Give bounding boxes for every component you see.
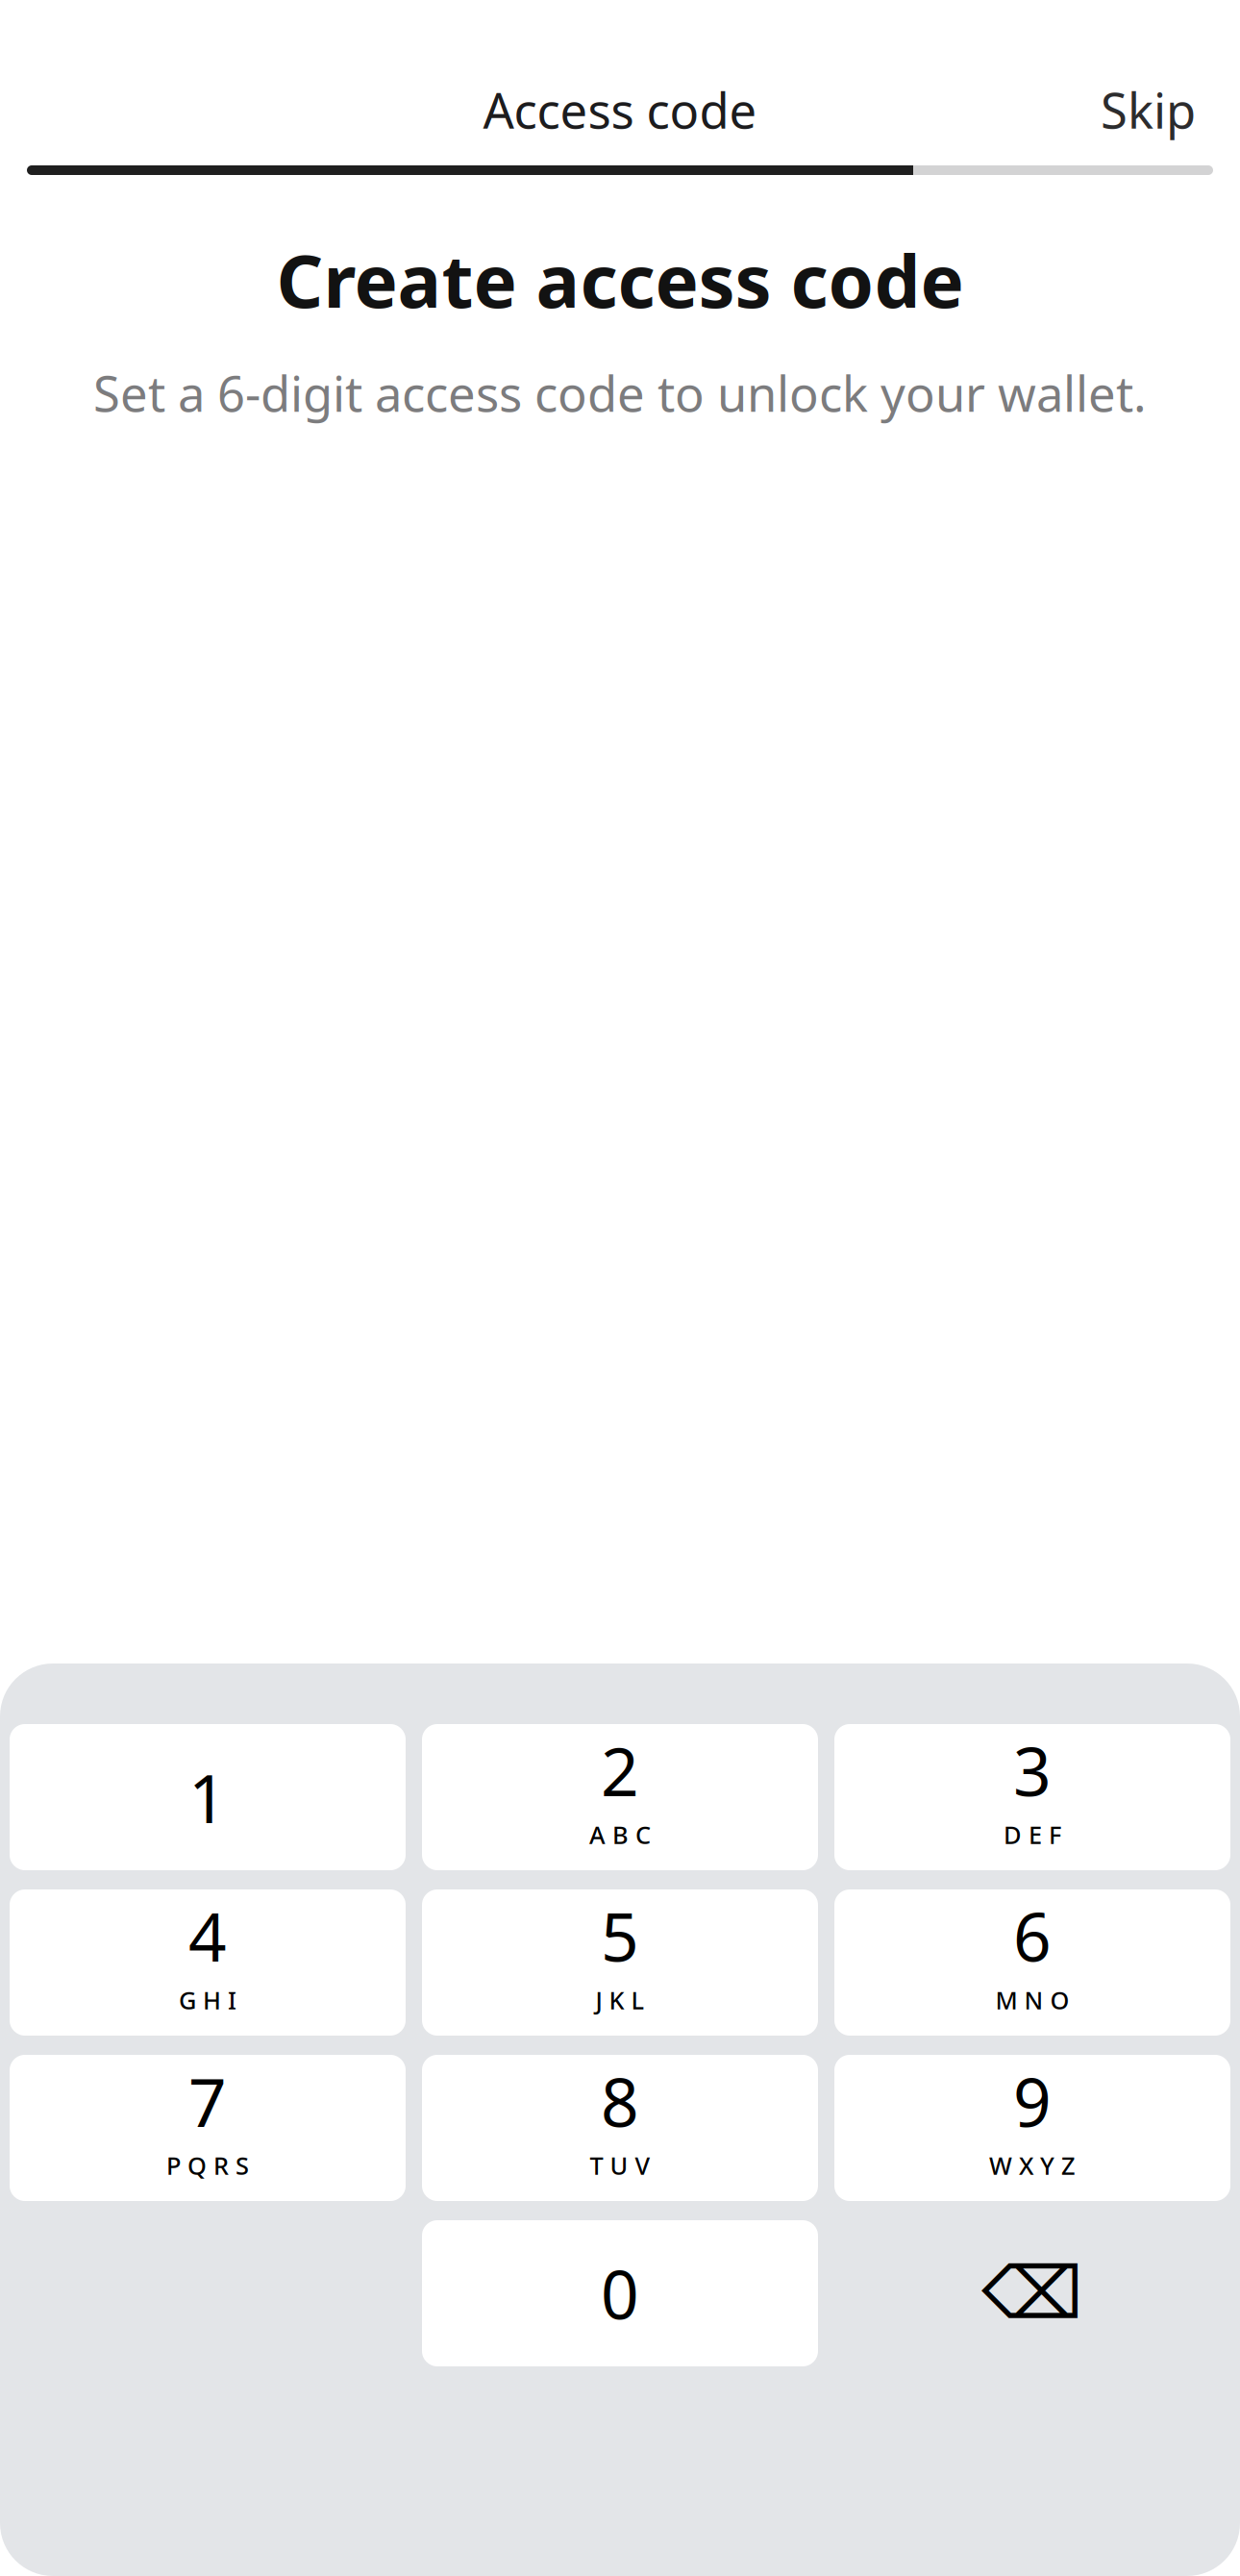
staticText: Set a 6-digit access code to unlock your…: [93, 360, 1147, 425]
button[interactable]: 9: [834, 2055, 1230, 2201]
staticText: 8: [601, 2057, 639, 2145]
staticText: A B C: [589, 1818, 651, 1851]
button[interactable]: 0: [422, 2220, 818, 2366]
staticText: Skip: [1101, 77, 1196, 142]
staticText: T U V: [590, 2149, 650, 2182]
staticText: W X Y Z: [989, 2149, 1076, 2182]
staticText: 1: [188, 1753, 227, 1841]
button[interactable]: 6: [834, 1889, 1230, 2036]
staticText: 4: [188, 1891, 227, 1980]
button[interactable]: Delete: [834, 2220, 1230, 2366]
staticText: ⌫: [981, 2253, 1083, 2334]
staticText: G H I: [179, 1984, 236, 2016]
button[interactable]: 5: [422, 1889, 818, 2036]
button[interactable]: 1: [10, 1724, 406, 1870]
staticText: D E F: [1004, 1818, 1061, 1851]
staticText: J K L: [595, 1984, 645, 2016]
staticText: M N O: [995, 1984, 1069, 2016]
staticText: 9: [1013, 2057, 1052, 2145]
staticText: 3: [1013, 1726, 1052, 1815]
staticText: 5: [601, 1891, 639, 1980]
button[interactable]: Skip: [1085, 66, 1211, 154]
staticText: 0: [601, 2249, 639, 2338]
staticText: Access code: [483, 77, 757, 142]
staticText: 7: [188, 2057, 227, 2145]
button[interactable]: 4: [10, 1889, 406, 2036]
button[interactable]: 2: [422, 1724, 818, 1870]
staticText: P Q R S: [166, 2149, 249, 2182]
staticText: 2: [601, 1726, 639, 1815]
staticText: Create access code: [276, 231, 964, 328]
button[interactable]: 7: [10, 2055, 406, 2201]
button[interactable]: 8: [422, 2055, 818, 2201]
staticText: 6: [1013, 1891, 1052, 1980]
button[interactable]: 3: [834, 1724, 1230, 1870]
